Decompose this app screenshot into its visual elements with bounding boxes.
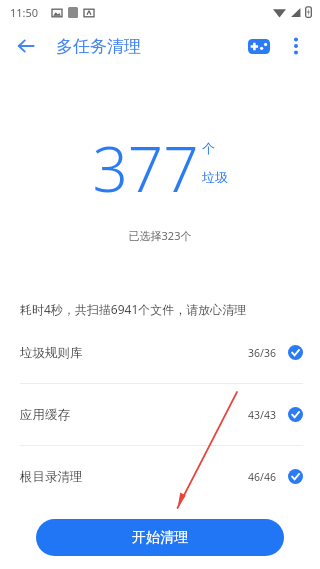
button[interactable]: Game mode	[242, 29, 276, 63]
button[interactable]: Back	[6, 26, 46, 66]
staticText: 垃圾规则库	[20, 345, 83, 361]
staticText: 开始清理	[132, 529, 188, 547]
staticText: 11:50	[10, 5, 39, 20]
staticText: 36/36	[248, 346, 276, 360]
staticText: 多任务清理	[56, 36, 141, 57]
staticText: 耗时4秒，共扫描6941个文件，请放心清理	[20, 301, 320, 317]
staticText: 垃圾	[202, 169, 228, 185]
staticText: 个	[202, 140, 215, 156]
button[interactable]: More options	[276, 26, 316, 66]
staticText: 应用缓存	[20, 407, 70, 423]
button[interactable]: 根目录清理	[0, 461, 320, 492]
button[interactable]: 垃圾规则库	[0, 337, 320, 368]
staticText: 已选择323个	[0, 228, 320, 243]
staticText: 46/46	[248, 470, 276, 484]
staticText: 43/43	[248, 408, 276, 422]
button[interactable]: 应用缓存	[0, 399, 320, 430]
button[interactable]: 开始清理	[36, 519, 284, 556]
staticText: 377	[92, 126, 199, 210]
staticText: 根目录清理	[20, 469, 83, 485]
